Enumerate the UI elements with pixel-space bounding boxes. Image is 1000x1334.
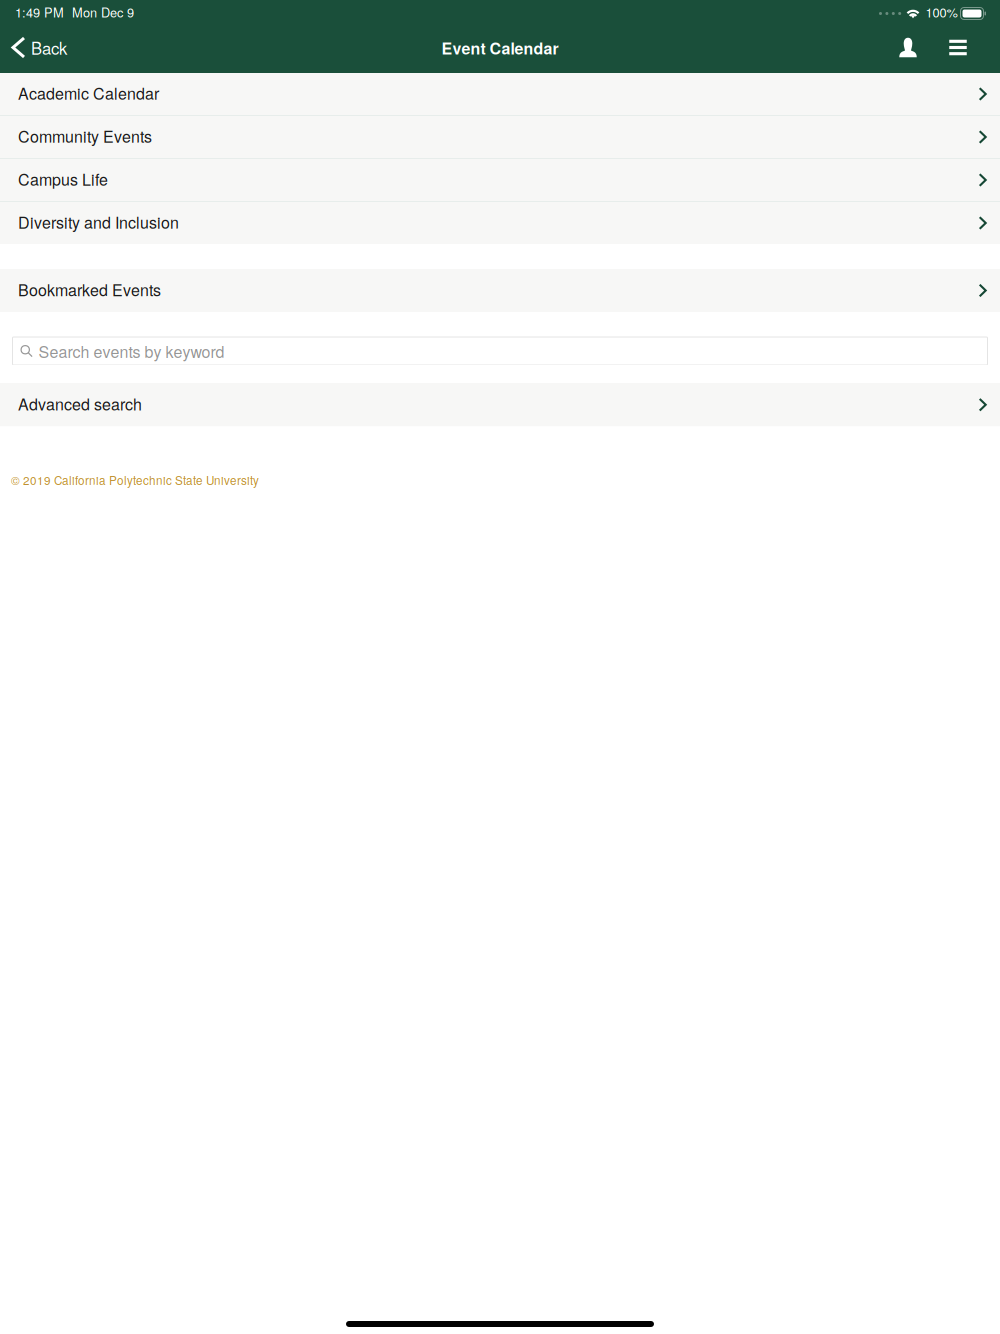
- staticText: Event Calendar: [441, 36, 558, 59]
- button[interactable]: Academic Calendar: [0, 73, 1000, 115]
- staticText: © 2019 California Polytechnic State Univ…: [11, 471, 259, 488]
- button[interactable]: Back: [0, 24, 77, 70]
- staticText: Advanced search: [18, 392, 142, 415]
- button[interactable]: Account: [883, 26, 933, 68]
- button[interactable]: Search events by keyword: [0, 337, 1000, 365]
- staticText: Campus Life: [18, 167, 108, 190]
- button[interactable]: Campus Life: [0, 159, 1000, 201]
- staticText: Diversity and Inclusion: [18, 210, 179, 233]
- staticText: Back: [31, 36, 67, 59]
- staticText: Community Events: [18, 124, 152, 147]
- button[interactable]: Diversity and Inclusion: [0, 202, 1000, 244]
- button[interactable]: Community Events: [0, 116, 1000, 158]
- button[interactable]: Advanced search: [0, 383, 1000, 426]
- button[interactable]: Menu: [933, 25, 983, 69]
- staticText: Mon Dec 9: [72, 3, 134, 21]
- staticText: Bookmarked Events: [18, 278, 161, 301]
- staticText: Academic Calendar: [18, 81, 159, 104]
- staticText: 100%: [925, 3, 957, 21]
- staticText: Search events by keyword: [38, 339, 224, 362]
- button[interactable]: Bookmarked Events: [0, 269, 1000, 312]
- staticText: 1:49 PM: [15, 3, 64, 21]
